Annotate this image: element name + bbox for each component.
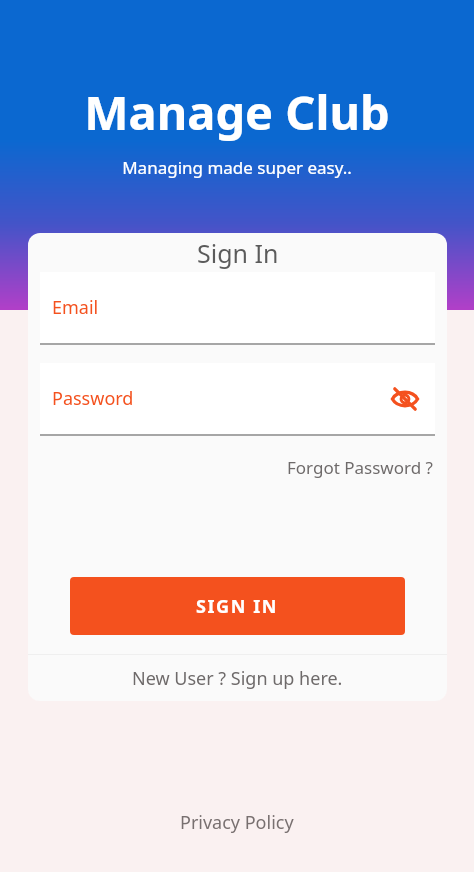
button[interactable]: Show password [385, 379, 425, 419]
button[interactable]: Password [40, 363, 435, 434]
button[interactable]: Privacy Policy [172, 806, 302, 839]
staticText: Password [52, 386, 134, 411]
button[interactable]: Email [40, 272, 435, 345]
staticText: Forgot Password ? [287, 456, 433, 479]
staticText: Sign In [197, 236, 279, 270]
staticText: Email [52, 295, 99, 320]
staticText: Privacy Policy [180, 810, 294, 835]
staticText: Managing made super easy.. [122, 156, 352, 179]
button[interactable]: New User ? Sign up here. [28, 655, 447, 701]
staticText: New User ? Sign up here. [132, 666, 343, 691]
button[interactable]: Forgot Password ? [283, 454, 437, 481]
staticText: Manage Club [84, 80, 390, 144]
button[interactable]: SIGN IN [70, 577, 405, 635]
staticText: SIGN IN [196, 594, 279, 619]
